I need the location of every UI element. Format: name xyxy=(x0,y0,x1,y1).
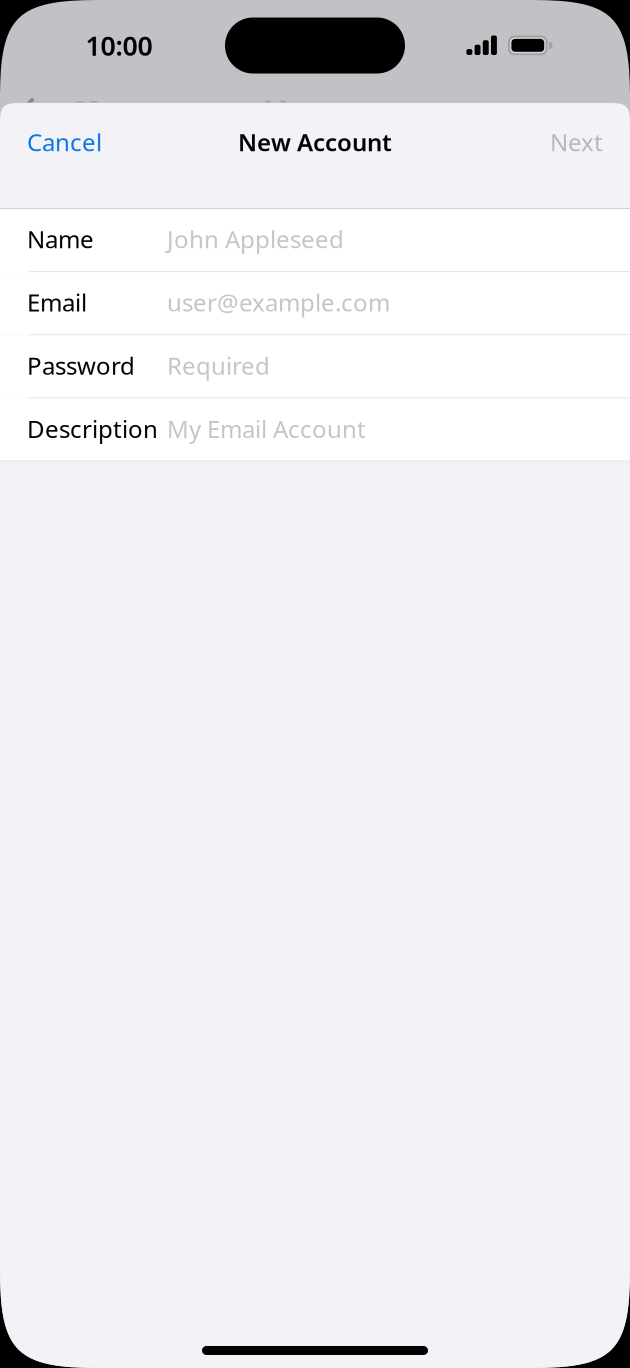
staticText: Description xyxy=(27,413,158,445)
staticText: user@example.com xyxy=(167,286,390,318)
staticText: My Email Account xyxy=(167,413,366,445)
button[interactable]: Next xyxy=(532,103,630,181)
button[interactable]: Email xyxy=(0,272,630,334)
staticText: New Account xyxy=(238,126,392,158)
button[interactable]: Name xyxy=(0,209,630,271)
staticText: Cancel xyxy=(27,126,102,158)
button[interactable]: Description xyxy=(0,399,630,461)
staticText: 10:00 xyxy=(85,28,152,63)
staticText: Password xyxy=(27,349,135,381)
staticText: John Appleseed xyxy=(167,223,344,255)
staticText: Name xyxy=(27,223,94,255)
button[interactable]: Cancel xyxy=(0,103,120,181)
button[interactable]: Password xyxy=(0,335,630,397)
staticText: Required xyxy=(167,349,270,381)
staticText: Next xyxy=(550,126,603,158)
staticText: Email xyxy=(27,286,87,318)
